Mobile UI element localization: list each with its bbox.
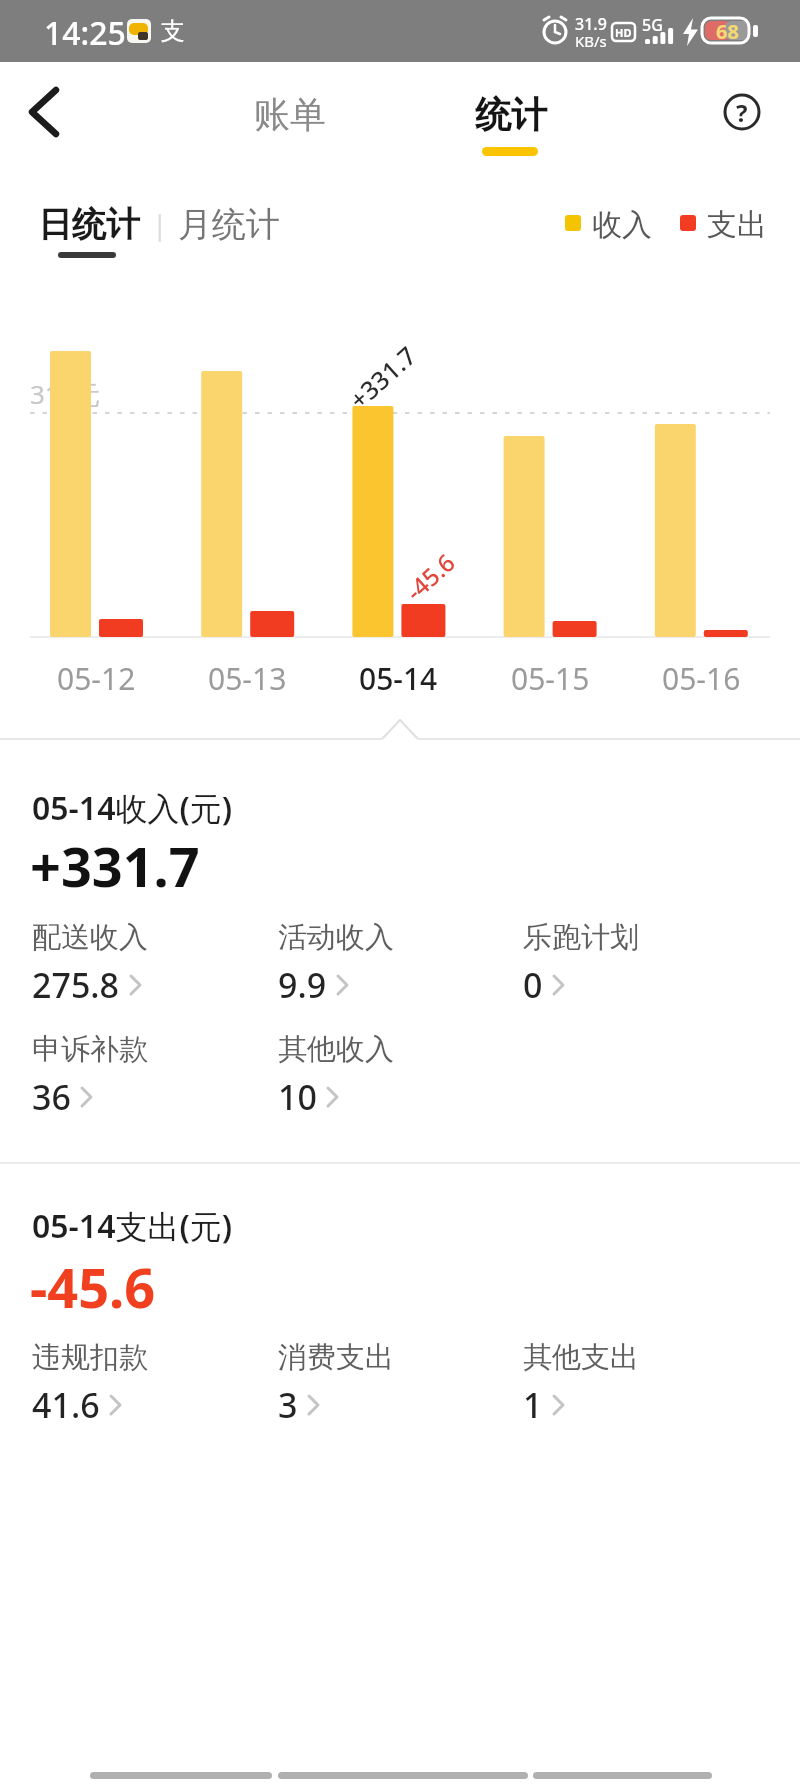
staticText: 配送收入 [32, 919, 148, 956]
staticText: 05-15 [511, 658, 590, 699]
staticText: 申诉补款 [32, 1031, 148, 1068]
staticText: 0 [523, 962, 543, 1008]
button[interactable]: 05-15 [490, 658, 610, 699]
button[interactable]: 违规扣款 [32, 1339, 252, 1428]
button[interactable]: 账单 [254, 92, 326, 137]
staticText: 05-16 [662, 658, 741, 699]
button[interactable]: 消费支出 [278, 1339, 498, 1428]
staticText: 违规扣款 [32, 1339, 148, 1376]
staticText: 其他支出 [523, 1339, 639, 1376]
button[interactable]: 05-16 [641, 658, 761, 699]
staticText: -45.6 [30, 1250, 156, 1324]
staticText: 1 [523, 1382, 543, 1428]
staticText: 14:25 [44, 11, 126, 55]
staticText: 41.6 [32, 1382, 100, 1428]
staticText: 消费支出 [278, 1339, 394, 1376]
staticText: 乐跑计划 [523, 919, 639, 956]
staticText: ? [736, 96, 748, 129]
button[interactable]: 活动收入 [278, 919, 498, 1008]
staticText: 支 [161, 16, 185, 46]
staticText: 05-12 [57, 658, 136, 699]
button[interactable]: 申诉补款 [32, 1031, 252, 1120]
button[interactable]: 05-12 [36, 658, 156, 699]
button[interactable]: 其他支出 [523, 1339, 743, 1428]
button[interactable] [14, 86, 70, 138]
staticText: 68 [716, 18, 739, 43]
staticText: 275.8 [32, 962, 120, 1008]
button[interactable]: 统计 [475, 92, 547, 137]
staticText: | [152, 205, 168, 243]
staticText: HD [615, 25, 632, 40]
staticText: 收入 [592, 206, 652, 244]
staticText: 活动收入 [278, 919, 394, 956]
staticText: 3 [278, 1382, 298, 1428]
staticText: 05-14 [359, 658, 438, 699]
button[interactable]: 其他收入 [278, 1031, 498, 1120]
button[interactable]: 乐跑计划 [523, 919, 743, 1008]
staticText: 10 [278, 1074, 317, 1120]
staticText: 05-14收入(元) [32, 786, 233, 830]
button[interactable]: 配送收入 [32, 919, 252, 1008]
staticText: 36 [32, 1074, 71, 1120]
staticText: 9.9 [278, 962, 327, 1008]
staticText: -45.6 [398, 545, 462, 607]
button[interactable]: 05-14 [338, 658, 458, 699]
staticText: +331.7 [30, 829, 200, 903]
staticText: 其他收入 [278, 1031, 394, 1068]
staticText: 5G [642, 14, 663, 36]
staticText: +331.7 [342, 338, 423, 416]
button[interactable]: ? [723, 93, 761, 131]
staticText: 31.9 [575, 13, 607, 35]
staticText: 319元 [30, 376, 101, 412]
staticText: 05-14支出(元) [32, 1204, 233, 1248]
staticText: 05-13 [208, 658, 287, 699]
staticText: 支出 [707, 206, 767, 244]
staticText: KB/s [575, 31, 607, 51]
button[interactable]: 05-13 [187, 658, 307, 699]
button[interactable]: 月统计 [178, 203, 280, 246]
button[interactable]: 日统计 [38, 203, 140, 246]
